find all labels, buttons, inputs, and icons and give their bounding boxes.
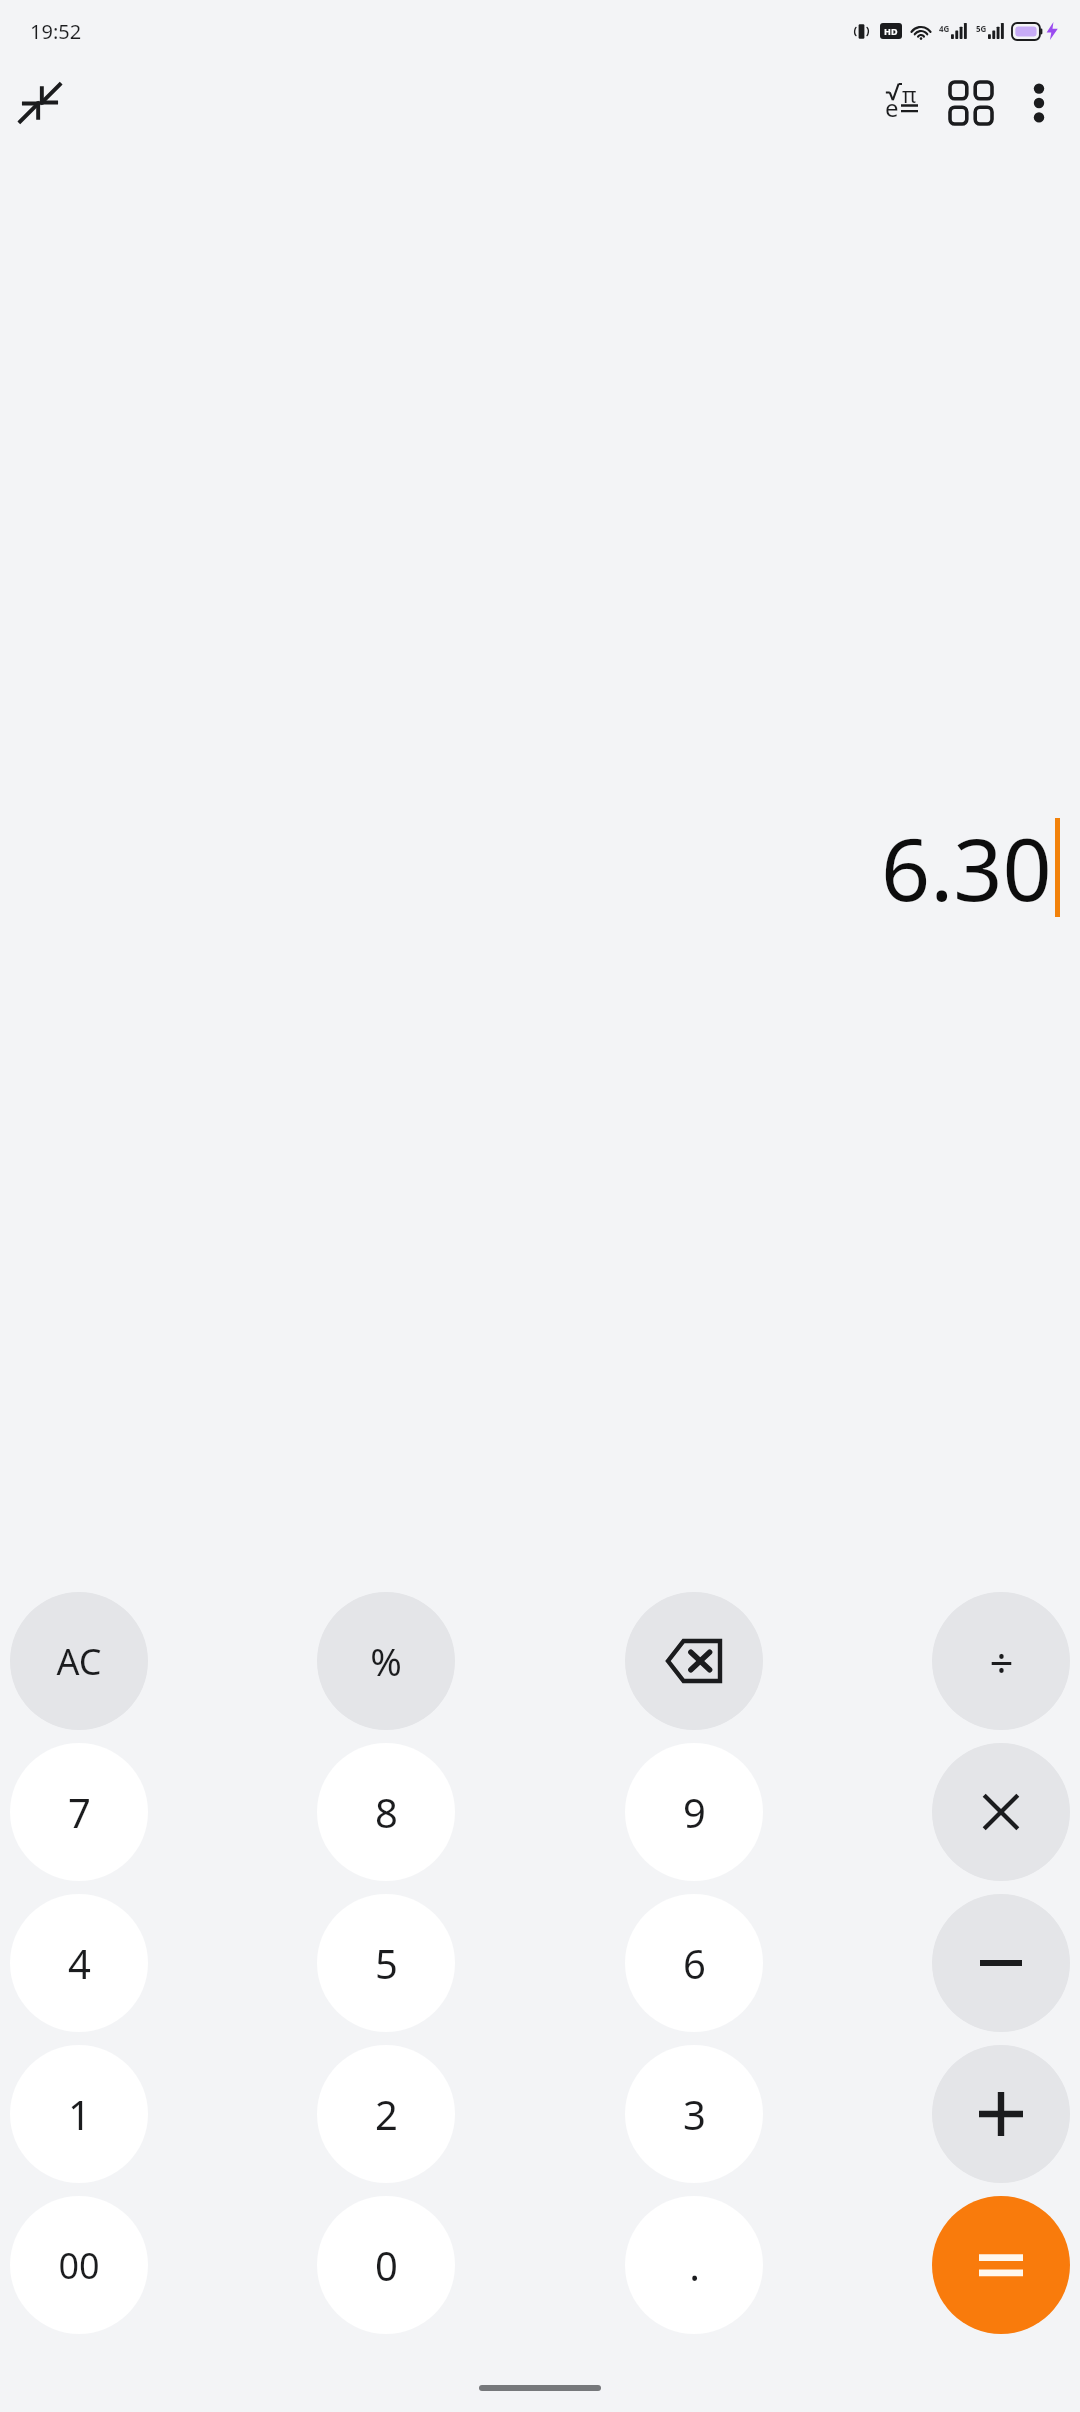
staticText: 5G <box>976 23 987 34</box>
button[interactable]: 5 <box>317 1894 455 2032</box>
staticText: 9 <box>683 1785 706 1839</box>
button[interactable]: Collapse <box>6 69 74 137</box>
staticText: 4 <box>68 1936 91 1990</box>
button[interactable]: Converters <box>936 68 1006 138</box>
staticText: 19:52 <box>30 18 82 45</box>
staticText: 5 <box>375 1936 398 1990</box>
staticText: 3 <box>683 2087 706 2141</box>
staticText: % <box>370 1635 402 1687</box>
button[interactable]: Backspace <box>625 1592 763 1730</box>
button[interactable]: 4 <box>10 1894 148 2032</box>
staticText: 1 <box>68 2087 91 2141</box>
button[interactable]: % <box>317 1592 455 1730</box>
button[interactable]: ÷ <box>932 1592 1070 1730</box>
button[interactable]: 00 <box>10 2196 148 2334</box>
staticText: . <box>689 2238 700 2292</box>
button[interactable]: Subtract <box>932 1894 1070 2032</box>
button[interactable]: 0 <box>317 2196 455 2334</box>
staticText: 2 <box>375 2087 398 2141</box>
staticText: 0 <box>375 2238 398 2292</box>
button[interactable]: 6 <box>625 1894 763 2032</box>
button[interactable]: 2 <box>317 2045 455 2183</box>
staticText: ÷ <box>989 1633 1014 1690</box>
button[interactable]: 7 <box>10 1743 148 1881</box>
button[interactable]: . <box>625 2196 763 2334</box>
button[interactable]: 8 <box>317 1743 455 1881</box>
button[interactable]: AC <box>10 1592 148 1730</box>
button[interactable]: Add <box>932 2045 1070 2183</box>
staticText: e <box>885 91 899 124</box>
button[interactable]: Scientific mode <box>866 68 936 138</box>
staticText: π <box>902 79 917 109</box>
button[interactable]: 1 <box>10 2045 148 2183</box>
button[interactable]: Equals <box>932 2196 1070 2334</box>
staticText: 7 <box>68 1785 91 1839</box>
staticText: HD <box>884 25 898 37</box>
button[interactable]: More options <box>1006 70 1072 136</box>
staticText: 6.30 <box>881 809 1052 926</box>
staticText: 8 <box>375 1785 398 1839</box>
staticText: 4G <box>939 23 950 34</box>
staticText: 6 <box>683 1936 706 1990</box>
staticText: AC <box>56 1637 102 1686</box>
button[interactable]: 3 <box>625 2045 763 2183</box>
button[interactable]: Multiply <box>932 1743 1070 1881</box>
button[interactable]: 9 <box>625 1743 763 1881</box>
staticText: 00 <box>58 2241 100 2290</box>
